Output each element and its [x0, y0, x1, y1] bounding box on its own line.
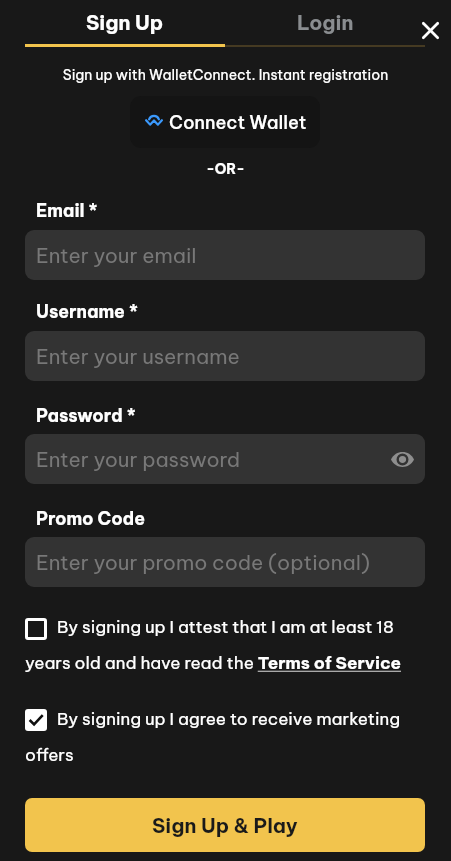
staticText: offers	[25, 744, 74, 766]
button[interactable]: Show password	[388, 445, 416, 473]
staticText: Connect Wallet	[169, 111, 307, 134]
button[interactable]: Sign Up & Play	[25, 798, 425, 852]
staticText: Enter your email	[36, 242, 197, 268]
staticText: Enter your promo code (optional)	[36, 549, 370, 575]
button[interactable]: Enter your email	[25, 230, 425, 280]
staticText: -OR-	[0, 160, 451, 178]
button[interactable]: By signing up I attest that I am at leas…	[25, 616, 425, 690]
staticText: Password *	[36, 404, 136, 426]
staticText: Sign Up	[86, 10, 164, 35]
button[interactable]: Enter your password	[25, 434, 425, 484]
staticText: years old and have read the Terms of Ser…	[25, 652, 402, 674]
button[interactable]: Enter your username	[25, 331, 425, 381]
staticText: Login	[297, 10, 354, 35]
staticText: Sign Up & Play	[152, 813, 298, 838]
staticText: Sign up with WalletConnect. Instant regi…	[0, 66, 451, 84]
staticText: Username *	[36, 300, 138, 322]
staticText: By signing up I agree to receive marketi…	[57, 708, 401, 730]
staticText: Email *	[36, 199, 98, 221]
staticText: Promo Code	[36, 507, 146, 529]
button[interactable]: By signing up I agree to receive marketi…	[25, 708, 425, 780]
button[interactable]: Enter your promo code (optional)	[25, 537, 425, 587]
staticText: Enter your password	[36, 446, 241, 472]
button[interactable]: Login	[225, 0, 425, 45]
button[interactable]: Connect Wallet	[130, 96, 320, 148]
button[interactable]: Sign Up	[25, 0, 225, 45]
staticText: Enter your username	[36, 343, 240, 369]
button[interactable]: Close	[413, 13, 447, 47]
staticText: By signing up I attest that I am at leas…	[57, 616, 394, 638]
